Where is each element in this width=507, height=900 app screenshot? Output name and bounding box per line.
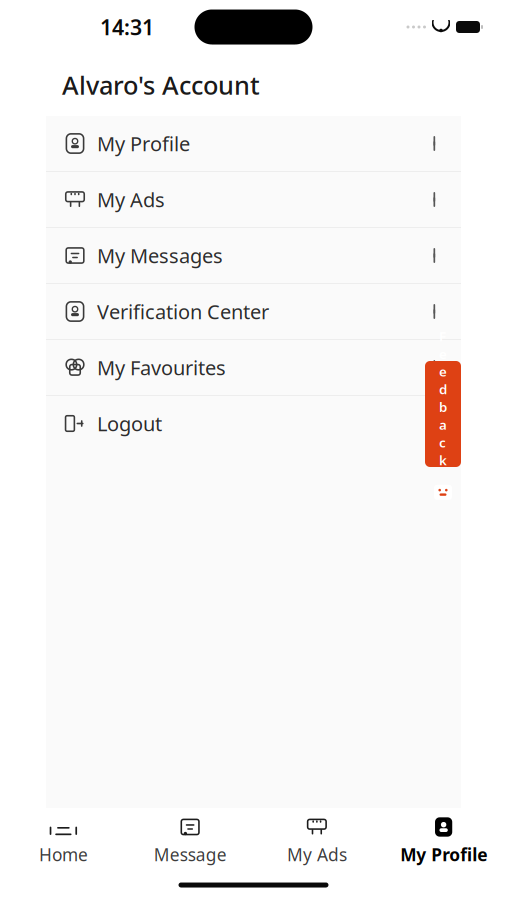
- staticText: F e e d b a c k: [439, 327, 447, 469]
- button[interactable]: My Ads: [46, 172, 461, 227]
- staticText: My Ads: [97, 186, 165, 213]
- button[interactable]: Feedback: [425, 361, 461, 467]
- button[interactable]: My Favourites: [46, 340, 461, 395]
- staticText: Home: [39, 843, 88, 866]
- staticText: My Profile: [400, 843, 487, 866]
- staticText: Message: [154, 843, 227, 866]
- button[interactable]: My Profile: [380, 806, 507, 872]
- button[interactable]: My Ads: [253, 806, 380, 872]
- button[interactable]: Message: [127, 806, 254, 872]
- button[interactable]: My Messages: [46, 228, 461, 283]
- button[interactable]: Verification Center: [46, 284, 461, 339]
- staticText: My Profile: [97, 130, 190, 157]
- button[interactable]: Home: [0, 806, 127, 872]
- button[interactable]: My Profile: [46, 116, 461, 171]
- staticText: 14:31: [100, 13, 154, 41]
- button[interactable]: Logout: [46, 396, 461, 451]
- staticText: My Ads: [287, 843, 347, 866]
- staticText: Alvaro's Account: [62, 68, 260, 102]
- staticText: My Favourites: [97, 354, 226, 381]
- staticText: Logout: [97, 410, 162, 437]
- staticText: Verification Center: [97, 298, 269, 325]
- staticText: My Messages: [97, 242, 223, 269]
